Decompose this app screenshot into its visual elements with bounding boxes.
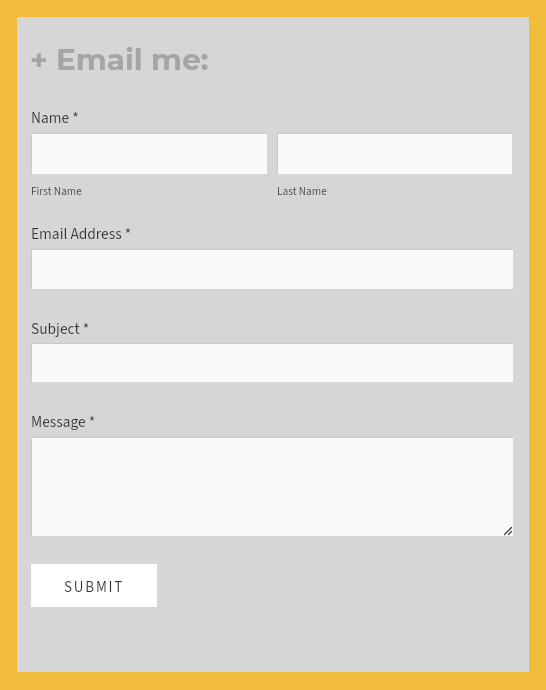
staticText: Subject * xyxy=(31,318,90,340)
staticText: Last Name xyxy=(277,183,327,199)
staticText: First Name xyxy=(31,183,82,199)
staticText: + Email me: xyxy=(30,41,209,77)
button[interactable]: SUBMIT xyxy=(31,564,157,607)
staticText: Name * xyxy=(31,107,79,129)
button[interactable]: Message xyxy=(32,438,513,536)
staticText: SUBMIT xyxy=(64,577,125,598)
staticText: Email Address * xyxy=(31,223,132,245)
staticText: Message * xyxy=(31,411,96,433)
